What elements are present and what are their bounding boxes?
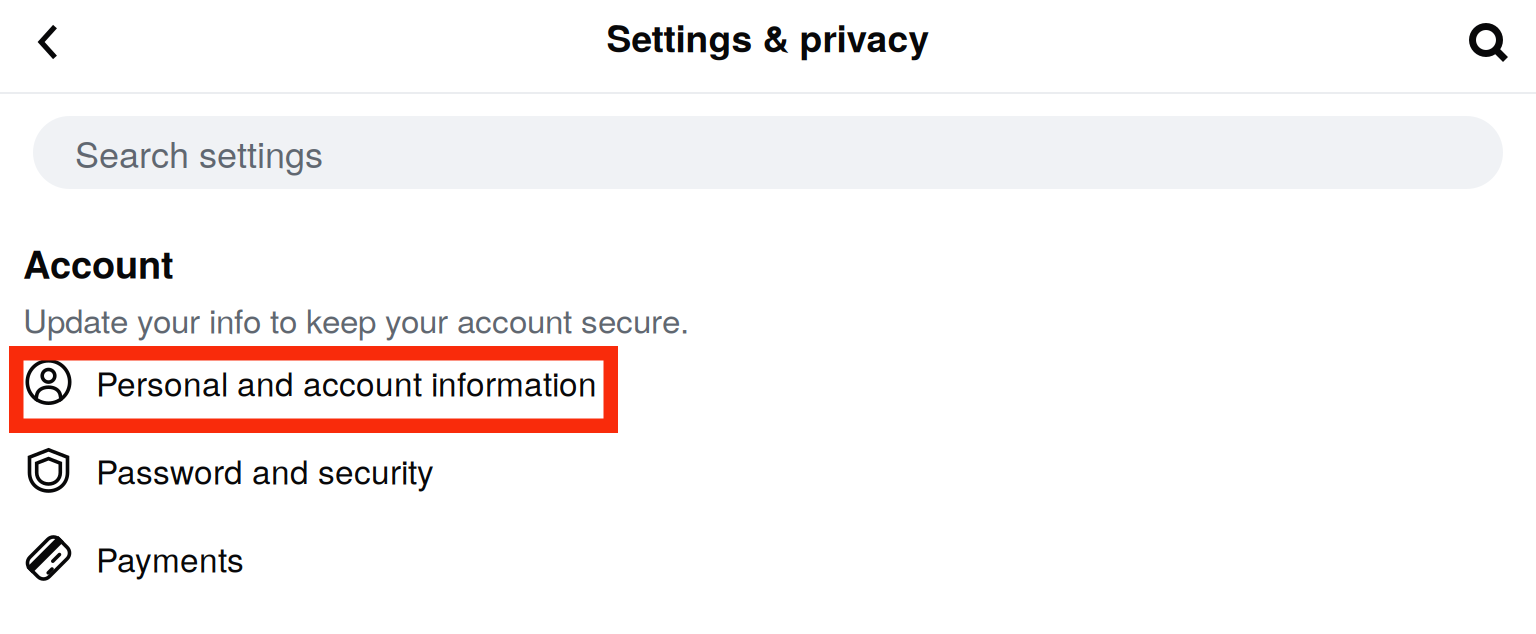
staticText: Update your info to keep your account se… <box>23 295 689 343</box>
button[interactable]: Search <box>1440 6 1536 87</box>
staticText: Search settings <box>75 127 323 178</box>
button[interactable]: Back <box>0 6 74 87</box>
staticText: Payments <box>96 534 244 582</box>
staticText: Password and security <box>96 446 434 494</box>
staticText: Personal and account information <box>96 358 597 406</box>
staticText: Settings & privacy <box>606 10 929 64</box>
button[interactable]: Payments <box>0 514 1536 602</box>
button[interactable]: Password and security <box>0 426 1536 514</box>
button[interactable]: Personal and account information <box>0 338 1536 426</box>
staticText: Account <box>23 236 174 290</box>
button[interactable]: Search settings <box>0 94 1536 189</box>
